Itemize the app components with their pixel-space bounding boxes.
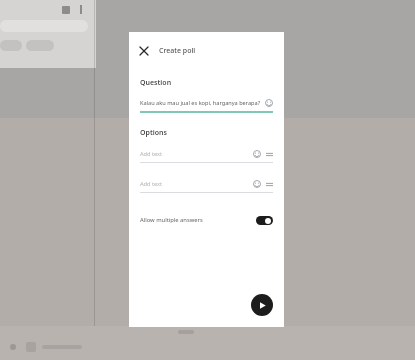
button[interactable]: Close <box>137 44 151 58</box>
button[interactable]: Send poll <box>251 294 273 316</box>
button[interactable]: Close <box>129 40 284 62</box>
staticText: Add text <box>140 150 253 158</box>
button[interactable]: Reorder option <box>266 181 273 188</box>
staticText: Add text <box>140 180 253 188</box>
other: Insert emoji <box>265 99 273 107</box>
staticText: Create poll <box>159 46 196 56</box>
button[interactable]: Add text <box>129 180 284 193</box>
staticText: Question <box>140 78 172 88</box>
staticText: Options <box>140 128 167 138</box>
button[interactable]: Allow multiple answers <box>129 210 284 230</box>
staticText: Allow multiple answers <box>140 216 256 224</box>
button[interactable]: Allow multiple answers toggle <box>256 216 273 225</box>
button[interactable]: Reorder option <box>266 151 273 158</box>
other: Insert emoji <box>253 180 261 188</box>
staticText: Kalau aku mau jual es kopi, harganya ber… <box>140 99 262 107</box>
button[interactable]: Kalau aku mau jual es kopi, harganya ber… <box>129 99 284 113</box>
other: Insert emoji <box>253 150 261 158</box>
button[interactable]: Add text <box>129 150 284 163</box>
